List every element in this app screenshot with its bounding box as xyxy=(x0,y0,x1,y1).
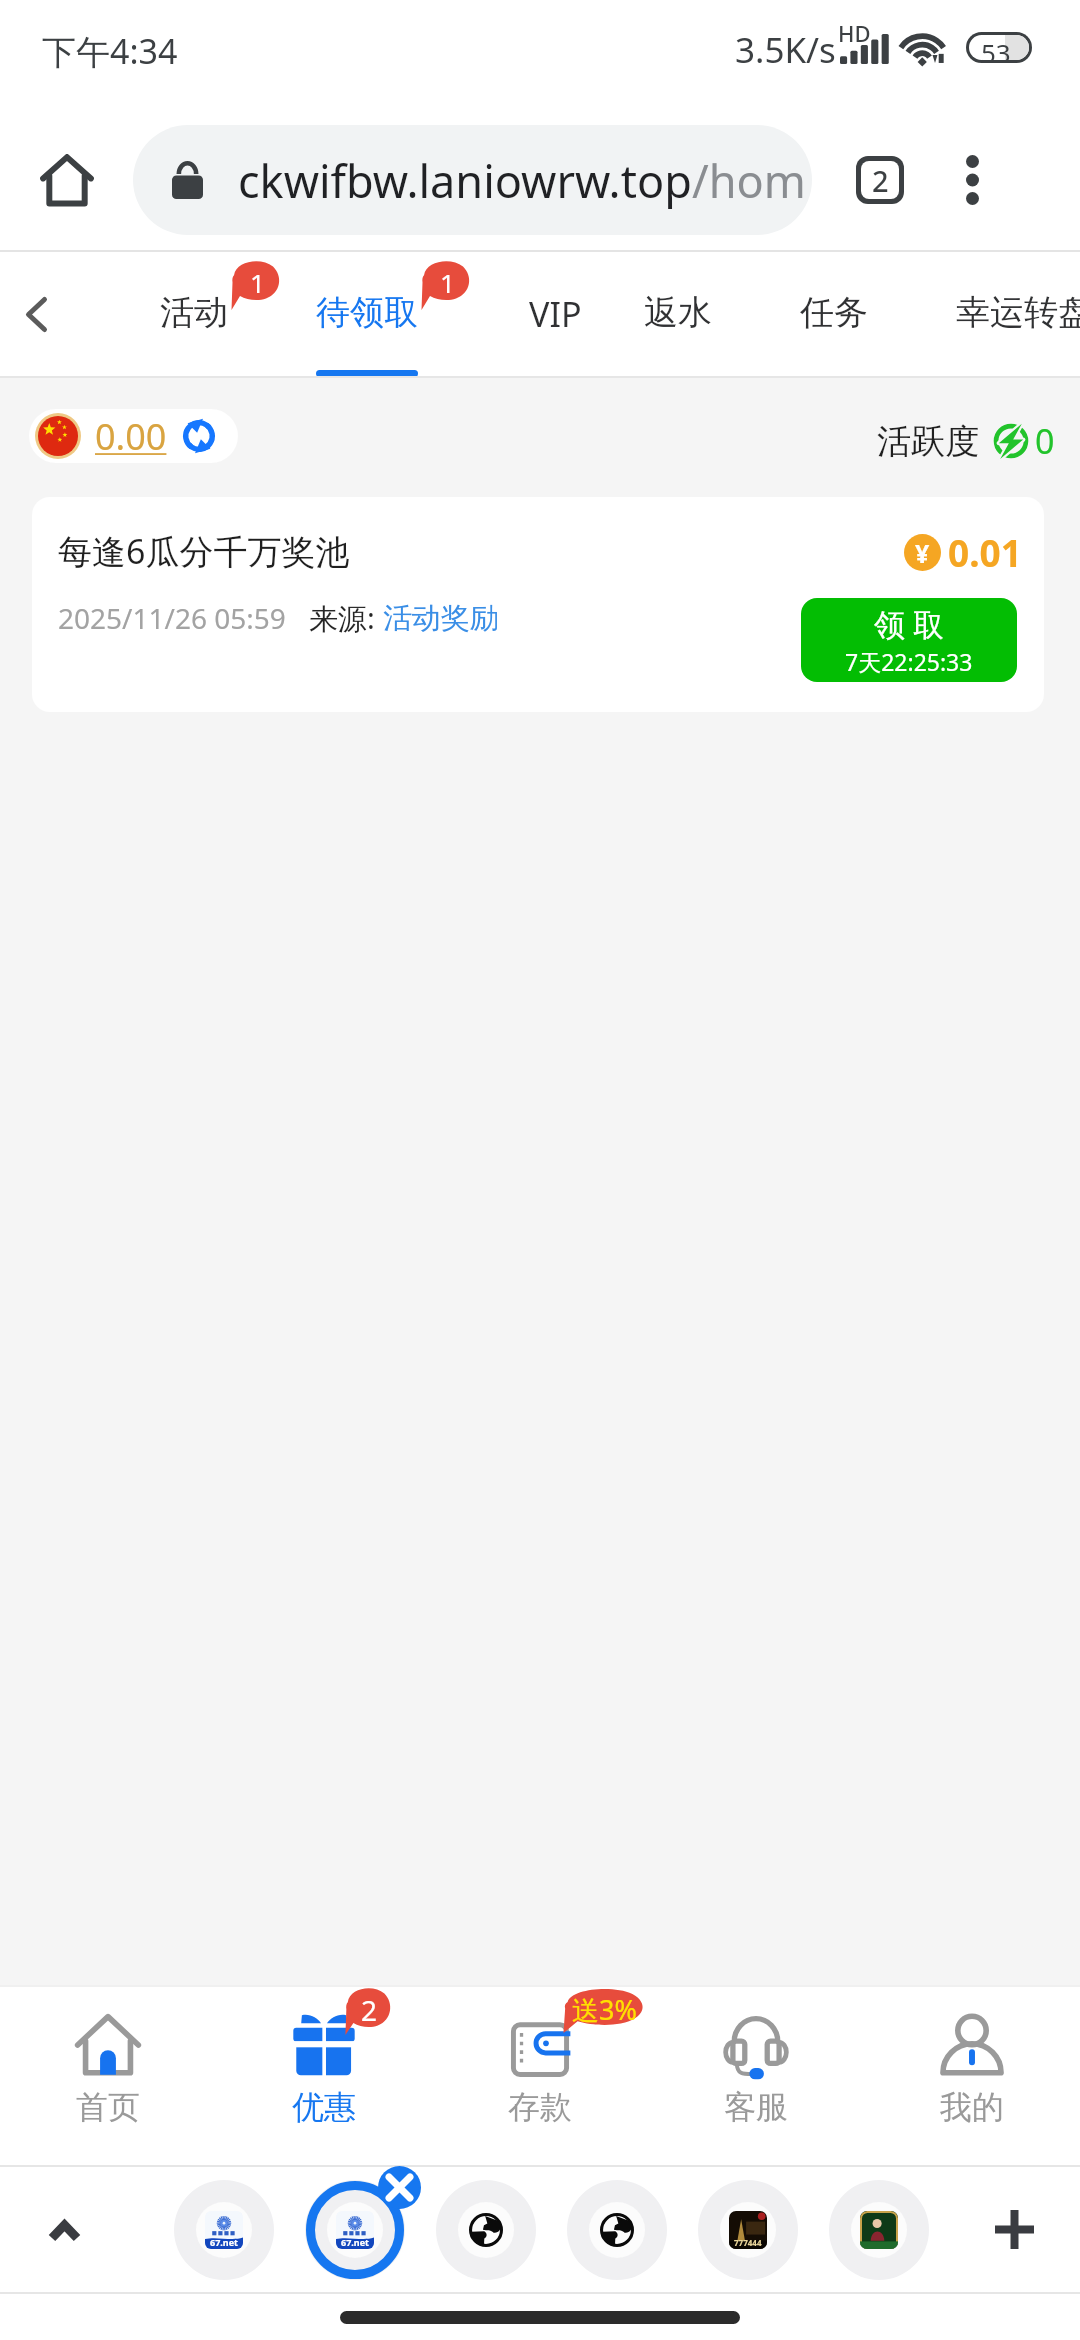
button[interactable]: Tabs xyxy=(833,133,927,227)
button[interactable]: Browser tab 6 xyxy=(821,2172,937,2288)
staticText: 活动 xyxy=(160,291,228,334)
button[interactable]: Browser tab 2 xyxy=(297,2172,413,2288)
staticText: 来源: xyxy=(309,598,383,638)
staticText: 客服 xyxy=(724,2087,788,2127)
button[interactable]: 每逢6瓜分千万奖池 xyxy=(32,497,1044,712)
staticText: 领 取 xyxy=(874,603,945,645)
button[interactable]: Browser tab 4 xyxy=(559,2172,675,2288)
staticText: 幸运转盘 xyxy=(956,291,1080,334)
button[interactable]: 我的 xyxy=(864,1987,1080,2165)
button[interactable]: Home xyxy=(0,110,133,250)
staticText: 0.00 xyxy=(95,412,167,461)
button[interactable]: ckwifbw.laniowrw.top xyxy=(133,125,812,235)
staticText: 2 xyxy=(361,1991,378,2029)
staticText: 首页 xyxy=(76,2087,140,2127)
staticText: 返水 xyxy=(644,291,712,334)
staticText: VIP xyxy=(529,291,582,337)
button[interactable]: 优惠 xyxy=(216,1987,432,2165)
button[interactable]: 存款 xyxy=(432,1987,648,2165)
staticText: 53 xyxy=(981,35,1011,60)
button[interactable]: Browser tab 3 xyxy=(428,2172,544,2288)
button[interactable]: 幸运转盘 xyxy=(928,252,1080,376)
staticText: 待领取 xyxy=(316,291,418,334)
button[interactable]: VIP xyxy=(476,252,634,376)
staticText: 我的 xyxy=(940,2087,1004,2127)
staticText: /hom xyxy=(692,150,806,211)
staticText: 3.5K/s xyxy=(735,26,836,74)
staticText: 2025/11/26 05:59 xyxy=(58,599,286,637)
button[interactable]: More options xyxy=(927,135,1017,225)
button[interactable]: Browser tab 5 xyxy=(690,2172,806,2288)
staticText: 7天22:25:33 xyxy=(845,646,973,677)
staticText: 1 xyxy=(250,265,265,300)
staticText: 67.net xyxy=(341,2236,369,2248)
button[interactable]: 任务 xyxy=(772,252,896,376)
staticText: 每逢6瓜分千万奖池 xyxy=(58,528,350,574)
staticText: 0.01 xyxy=(948,527,1022,577)
button[interactable]: New tab xyxy=(970,2185,1058,2273)
button[interactable]: 0.00 xyxy=(29,409,238,463)
staticText: ¥ xyxy=(915,536,930,570)
button[interactable]: Browser tab 1 xyxy=(166,2172,282,2288)
staticText: 2 xyxy=(872,161,889,199)
button[interactable]: 首页 xyxy=(0,1987,216,2165)
button[interactable]: Back xyxy=(0,252,105,376)
button[interactable]: 领 取 xyxy=(801,598,1017,682)
staticText: ckwifbw.laniowrw.top xyxy=(238,150,692,211)
staticText: 存款 xyxy=(508,2087,572,2127)
button[interactable]: 返水 xyxy=(616,252,740,376)
staticText: 67.net xyxy=(210,2236,238,2248)
staticText: 任务 xyxy=(800,291,868,334)
staticText: HD xyxy=(838,18,871,48)
staticText: 0 xyxy=(1035,418,1055,464)
staticText: 送3% xyxy=(572,1991,637,2028)
staticText: 1 xyxy=(440,265,455,300)
button[interactable]: 活动 xyxy=(132,252,256,376)
staticText: 活动奖励 xyxy=(383,600,499,637)
staticText: 优惠 xyxy=(292,2087,356,2127)
staticText: 777444 xyxy=(734,2237,762,2248)
button[interactable]: Expand tabs xyxy=(30,2167,104,2292)
button[interactable]: 待领取 xyxy=(288,252,446,376)
staticText: 活跃度 xyxy=(877,420,979,463)
staticText: 下午4:34 xyxy=(42,28,178,74)
button[interactable]: 客服 xyxy=(648,1987,864,2165)
